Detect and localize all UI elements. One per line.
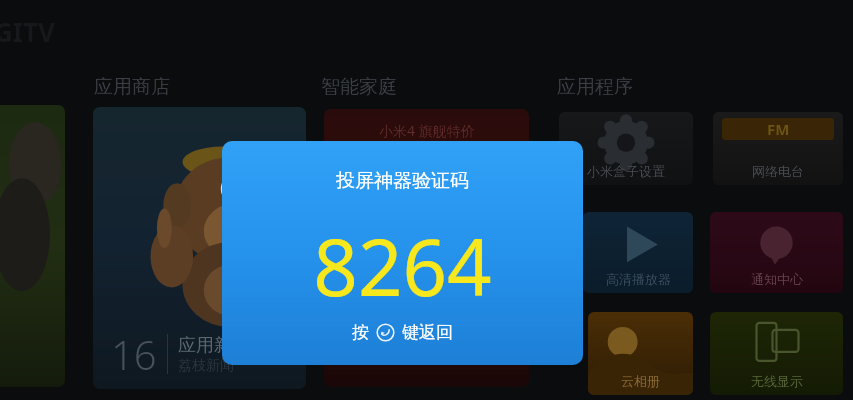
staticText: 8264	[313, 213, 492, 319]
staticText: 投屏神器验证码	[336, 169, 469, 193]
button[interactable]: 小米4 旗舰特价	[324, 109, 529, 387]
staticText: 无线显示	[751, 373, 803, 389]
button[interactable]: 高清播放器	[583, 212, 693, 293]
button[interactable]: 小米盒子设置	[559, 112, 693, 185]
staticText: 小米4 旗舰特价	[379, 121, 475, 140]
staticText: 16	[111, 327, 157, 381]
staticText: 应用商店	[94, 75, 170, 99]
staticText: 应用新秀	[178, 334, 250, 357]
staticText: GITV	[0, 14, 55, 49]
staticText: 荔枝新闻	[178, 357, 234, 375]
staticText: 云相册	[621, 373, 660, 389]
staticText: 通知中心	[751, 271, 803, 287]
button[interactable]: FM	[713, 112, 843, 185]
button[interactable]: 无线显示	[710, 312, 843, 395]
button[interactable]: 投屏神器验证码	[222, 141, 583, 365]
staticText: 键返回	[402, 322, 453, 343]
button[interactable]: 按返回键返回	[352, 322, 453, 343]
staticText: 应用程序	[557, 75, 633, 99]
staticText: 网络电台	[752, 163, 804, 179]
button[interactable]	[0, 105, 65, 387]
staticText: 小米盒子设置	[587, 163, 665, 179]
staticText: 按	[352, 322, 369, 343]
staticText: 智能家庭	[321, 75, 397, 99]
button[interactable]: 16	[93, 107, 306, 389]
button[interactable]: 通知中心	[710, 212, 843, 293]
staticText: FM	[767, 119, 790, 139]
staticText: 高清播放器	[606, 271, 671, 287]
button[interactable]: 云相册	[588, 312, 693, 395]
